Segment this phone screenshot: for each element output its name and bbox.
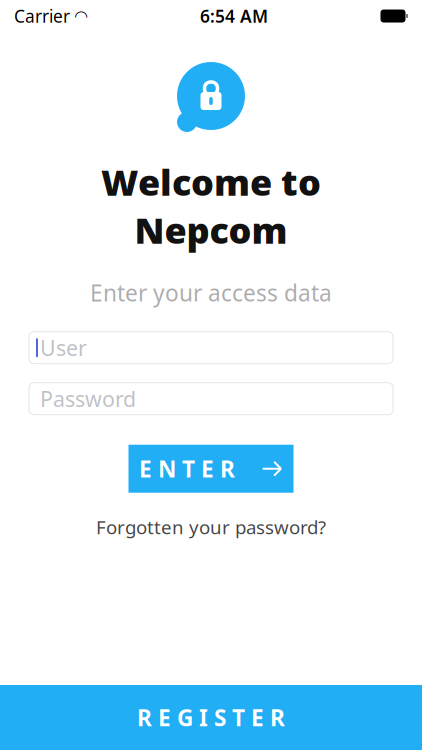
staticText: Forgotten your password? [96,515,326,539]
staticText: ◠ [75,7,87,25]
staticText: Password [40,384,136,413]
staticText: User [40,333,87,362]
staticText: R E G I S T E R [137,702,285,732]
staticText: E N T E R [139,454,235,484]
staticText: Nepcom [134,206,287,254]
button[interactable]: Forgotten your password? [88,509,334,545]
button[interactable]: User [29,332,393,364]
staticText: Enter your access data [90,278,332,308]
button[interactable]: R E G I S T E R [0,685,422,750]
button[interactable]: E N T E R [128,445,293,493]
button[interactable]: Password [29,383,393,415]
staticText: 6:54 AM [200,4,268,27]
staticText: Welcome to [101,158,321,206]
staticText: Carrier [14,4,70,27]
